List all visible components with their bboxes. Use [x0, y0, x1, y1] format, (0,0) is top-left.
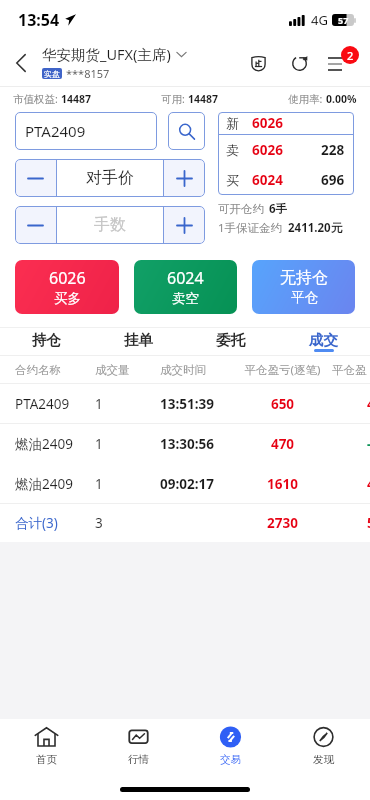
staticText: 手数: [94, 215, 126, 235]
button[interactable]: 行情: [92, 719, 184, 781]
staticText: -: [367, 435, 370, 453]
button[interactable]: 燃油2409: [0, 424, 370, 463]
staticText: 5: [367, 514, 370, 532]
button[interactable]: Menu: [320, 40, 349, 86]
button[interactable]: Refresh: [279, 40, 320, 86]
staticText: 2730: [237, 514, 328, 532]
button[interactable]: 燃油2409: [0, 464, 370, 503]
staticText: 14487: [188, 92, 219, 106]
button[interactable]: Decrease: [15, 206, 56, 244]
staticText: 可开仓约: [218, 202, 264, 216]
button[interactable]: 交易: [184, 719, 277, 781]
staticText: 6024: [252, 171, 283, 189]
staticText: 6手: [269, 201, 288, 217]
staticText: 市值权益:: [13, 92, 61, 106]
button[interactable]: 持仓: [0, 328, 92, 355]
staticText: 1: [95, 475, 160, 493]
staticText: 13:54: [18, 9, 60, 31]
staticText: 无持仓: [280, 268, 328, 288]
staticText: 成交量: [95, 363, 160, 377]
staticText: 1: [95, 395, 160, 413]
button[interactable]: 发现: [277, 719, 370, 781]
staticText: 平仓盈亏(逐笔): [237, 362, 328, 378]
staticText: 6026: [252, 114, 283, 132]
button[interactable]: Security: [238, 40, 279, 86]
staticText: 挂单: [124, 331, 153, 349]
staticText: 卖空: [172, 290, 199, 307]
staticText: 6026: [49, 267, 86, 289]
staticText: 华安期货_UFX(主席): [42, 44, 171, 64]
staticText: 可用:: [161, 92, 188, 106]
button[interactable]: 无持仓: [252, 260, 355, 314]
staticText: 燃油2409: [15, 435, 95, 453]
staticText: 实盘: [44, 69, 60, 79]
staticText: 使用率:: [288, 92, 326, 106]
staticText: 合约名称: [15, 363, 95, 377]
staticText: 成交: [309, 331, 338, 349]
staticText: 成交时间: [160, 363, 237, 377]
staticText: 1: [95, 435, 160, 453]
staticText: 新: [226, 115, 239, 131]
button[interactable]: 对手价: [57, 159, 163, 197]
staticText: ***8157: [66, 66, 110, 81]
staticText: 平仓盈: [332, 363, 367, 377]
button[interactable]: PTA2409: [15, 112, 157, 150]
staticText: 4: [367, 475, 370, 493]
staticText: PTA2409: [15, 395, 95, 413]
staticText: 14487: [61, 92, 92, 106]
button[interactable]: Decrease: [15, 159, 56, 197]
staticText: PTA2409: [25, 121, 86, 141]
button[interactable]: 手数: [57, 206, 163, 244]
staticText: 持仓: [32, 331, 61, 349]
staticText: 委托: [216, 331, 245, 349]
staticText: 6026: [252, 141, 283, 159]
staticText: 发现: [313, 753, 334, 766]
button[interactable]: 挂单: [92, 328, 184, 355]
staticText: 13:30:56: [160, 435, 237, 453]
button[interactable]: Back: [0, 40, 42, 86]
button[interactable]: 成交: [277, 328, 370, 355]
staticText: 2: [347, 48, 354, 63]
staticText: 4G: [311, 11, 328, 29]
button[interactable]: Search: [168, 112, 205, 150]
staticText: 首页: [36, 753, 57, 766]
staticText: 买: [226, 172, 239, 188]
staticText: 1手保证金约: [218, 220, 283, 236]
staticText: 3: [95, 514, 160, 532]
staticText: 4: [367, 395, 370, 413]
staticText: 470: [237, 435, 328, 453]
staticText: 卖: [226, 142, 239, 158]
staticText: 09:02:17: [160, 475, 237, 493]
staticText: 交易: [220, 753, 241, 766]
staticText: 燃油2409: [15, 475, 95, 493]
button[interactable]: 6026: [15, 260, 119, 314]
button[interactable]: PTA2409: [0, 384, 370, 423]
button[interactable]: 委托: [184, 328, 277, 355]
staticText: 平仓: [291, 289, 318, 306]
staticText: 行情: [128, 753, 149, 766]
staticText: 1610: [237, 475, 328, 493]
staticText: 对手价: [86, 168, 134, 188]
button[interactable]: Increase: [164, 206, 205, 244]
staticText: 2411.20元: [288, 220, 343, 236]
staticText: 合计(3): [15, 514, 95, 532]
staticText: 57: [338, 14, 349, 26]
button[interactable]: Increase: [164, 159, 205, 197]
staticText: 买多: [54, 290, 81, 307]
staticText: 0.00%: [326, 92, 357, 106]
staticText: 13:51:39: [160, 395, 237, 413]
staticText: 6024: [167, 267, 204, 289]
staticText: 696: [321, 171, 345, 189]
button[interactable]: 6024: [134, 260, 237, 314]
staticText: 650: [237, 395, 328, 413]
staticText: 228: [321, 141, 345, 159]
button[interactable]: 首页: [0, 719, 92, 781]
